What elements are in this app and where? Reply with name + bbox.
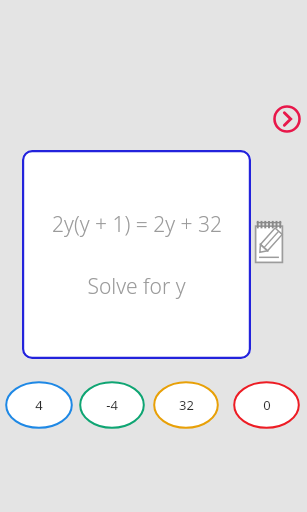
staticText: -4 bbox=[106, 396, 118, 414]
staticText: 4 bbox=[35, 396, 43, 414]
button[interactable]: -4 bbox=[79, 381, 145, 429]
button[interactable]: 2y(y + 1) = 2y + 32 bbox=[22, 150, 251, 359]
staticText: 2y(y + 1) = 2y + 32 bbox=[52, 210, 222, 239]
staticText: Solve for y bbox=[87, 272, 186, 301]
button[interactable]: 4 bbox=[5, 381, 73, 429]
button[interactable]: 0 bbox=[233, 381, 300, 429]
button[interactable]: Scratchpad bbox=[254, 220, 284, 264]
button[interactable]: 32 bbox=[153, 381, 219, 429]
staticText: 0 bbox=[263, 396, 271, 414]
button[interactable]: Next question bbox=[273, 105, 301, 133]
staticText: 32 bbox=[179, 396, 194, 414]
